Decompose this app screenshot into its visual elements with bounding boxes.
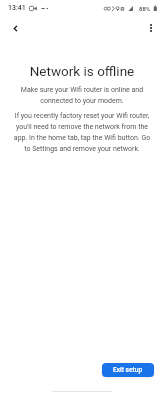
- button[interactable]: Exit setup: [102, 363, 154, 377]
- staticText: 88%: [139, 5, 151, 12]
- staticText: If you recently factory reset your Wifi …: [10, 112, 154, 153]
- staticText: Exit setup: [113, 366, 143, 374]
- staticText: Make sure your Wifi router is online and…: [12, 86, 152, 105]
- staticText: Network is offline: [0, 63, 164, 79]
- button[interactable]: Back: [4, 17, 26, 39]
- button[interactable]: More options: [140, 17, 162, 39]
- staticText: 13:41: [8, 4, 26, 12]
